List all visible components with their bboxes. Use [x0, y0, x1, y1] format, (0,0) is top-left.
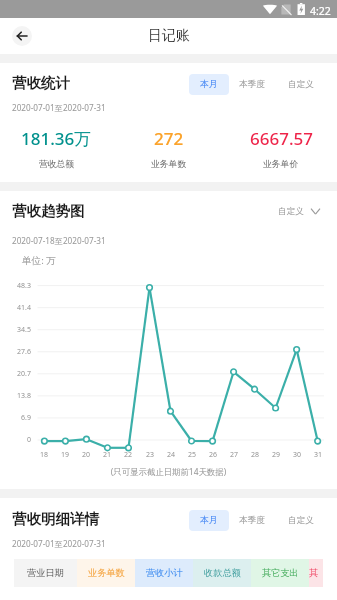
button[interactable]: 自定义 [278, 201, 320, 222]
button[interactable]: 本季度 [232, 510, 272, 531]
staticText: 营收小计 [146, 567, 183, 579]
staticText: 营业日期 [27, 567, 64, 579]
staticText: 本季度 [239, 79, 265, 90]
staticText: 31 [309, 450, 327, 460]
staticText: 本季度 [239, 515, 265, 526]
staticText: 0 [0, 435, 31, 445]
staticText: 单位: 万 [22, 254, 56, 267]
button[interactable]: 收款总额 [193, 559, 251, 587]
staticText: 2020-07-01至2020-07-31 [12, 538, 106, 549]
button[interactable]: 自定义 [281, 510, 321, 531]
staticText: 34.5 [0, 325, 31, 335]
button[interactable]: 本月 [189, 74, 229, 95]
button[interactable]: 其它支出 [251, 559, 309, 587]
staticText: 营收统计 [12, 74, 70, 92]
staticText: (只可显示截止日期前14天数据) [0, 466, 337, 477]
staticText: 181.36万 [21, 127, 92, 150]
staticText: 6667.57 [250, 127, 313, 150]
staticText: 23 [141, 450, 159, 460]
staticText: 营收总额 [39, 159, 75, 170]
button[interactable]: 营业日期 [14, 559, 77, 587]
staticText: 其它支出 [262, 567, 299, 579]
staticText: 24 [162, 450, 180, 460]
button[interactable]: 本月 [189, 510, 229, 531]
staticText: 业务单价 [263, 159, 299, 170]
staticText: 自定义 [278, 206, 304, 217]
staticText: 27.6 [0, 347, 31, 357]
staticText: 自定义 [288, 79, 314, 90]
staticText: 收款总额 [204, 567, 241, 579]
button[interactable]: 其它收入 [309, 559, 323, 587]
staticText: 41.4 [0, 303, 31, 313]
staticText: 28 [246, 450, 264, 460]
staticText: 48.3 [0, 281, 31, 291]
staticText: 4:22 [310, 4, 331, 18]
staticText: 本月 [200, 515, 218, 526]
staticText: 营收趋势图 [12, 202, 85, 220]
staticText: 日记账 [148, 27, 190, 45]
staticText: 22 [119, 450, 137, 460]
staticText: 业务单数 [151, 159, 187, 170]
staticText: 自定义 [288, 515, 314, 526]
staticText: 业务单数 [88, 567, 125, 579]
staticText: 其它收入 [309, 567, 323, 579]
staticText: 27 [225, 450, 243, 460]
button[interactable]: Back [12, 26, 32, 46]
button[interactable]: 本季度 [232, 74, 272, 95]
staticText: 18 [35, 450, 53, 460]
staticText: 本月 [200, 79, 218, 90]
staticText: 13.8 [0, 391, 31, 401]
staticText: 30 [288, 450, 306, 460]
staticText: 营收明细详情 [12, 510, 99, 528]
staticText: 29 [267, 450, 285, 460]
button[interactable]: 自定义 [281, 74, 321, 95]
button[interactable]: 业务单数 [77, 559, 135, 587]
staticText: 20.7 [0, 369, 31, 379]
staticText: 19 [56, 450, 74, 460]
staticText: 21 [98, 450, 116, 460]
staticText: 2020-07-18至2020-07-31 [12, 235, 106, 246]
staticText: 2020-07-01至2020-07-31 [12, 102, 106, 113]
staticText: 20 [77, 450, 95, 460]
staticText: 272 [154, 127, 184, 150]
staticText: 25 [183, 450, 201, 460]
button[interactable]: 营收小计 [135, 559, 193, 587]
staticText: 6.9 [0, 413, 31, 423]
staticText: 26 [204, 450, 222, 460]
